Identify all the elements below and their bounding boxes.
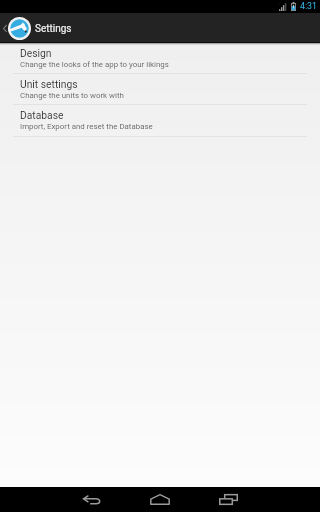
staticText: Design bbox=[20, 47, 52, 59]
staticText: Change the units to work with bbox=[20, 91, 124, 100]
staticText: Unit settings bbox=[20, 78, 78, 90]
staticText: Database bbox=[20, 109, 64, 121]
staticText: Import, Export and reset the Database bbox=[20, 122, 153, 131]
staticText: Change the looks of the app to your liki… bbox=[20, 60, 169, 69]
staticText: 4:31 bbox=[300, 1, 317, 11]
button[interactable]: Navigate up bbox=[0, 13, 320, 43]
staticText: Settings bbox=[35, 23, 72, 35]
button[interactable]: Back bbox=[58, 487, 126, 512]
button[interactable]: Recent apps bbox=[194, 487, 262, 512]
button[interactable]: Home bbox=[126, 487, 194, 512]
button[interactable]: Design bbox=[0, 43, 320, 73]
button[interactable]: Unit settings bbox=[0, 74, 320, 104]
button[interactable]: Database bbox=[0, 105, 320, 136]
